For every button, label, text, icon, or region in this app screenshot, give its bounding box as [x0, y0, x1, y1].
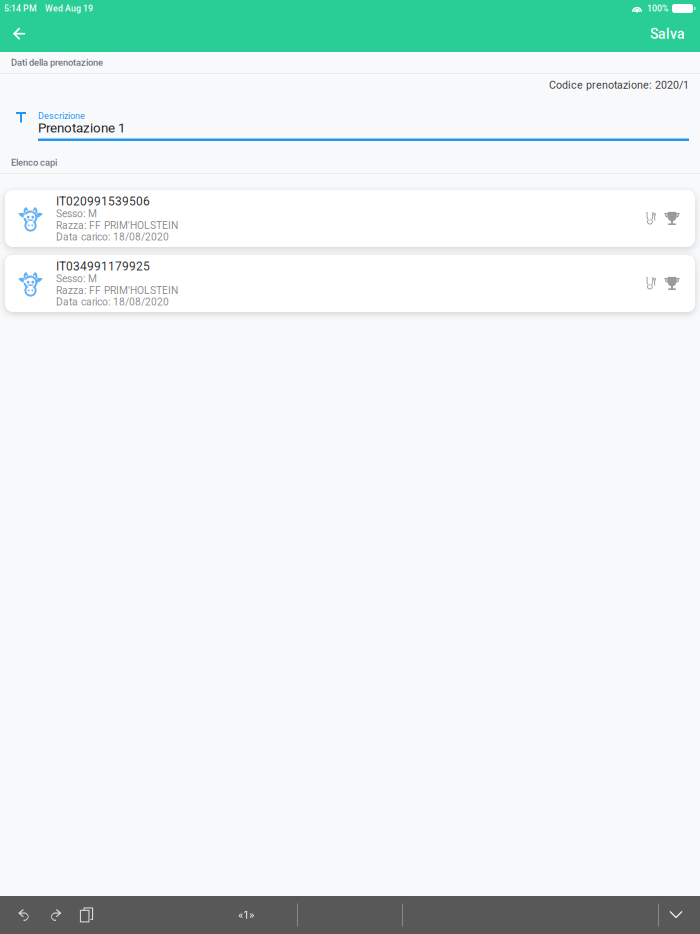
staticText: IT020991539506	[56, 194, 150, 209]
staticText: «1»	[238, 908, 254, 922]
button[interactable]: «1»	[216, 896, 276, 934]
button[interactable]: IT020991539506	[5, 190, 695, 247]
button[interactable]: Redo	[40, 896, 71, 934]
staticText: Data carico: 18/08/2020	[56, 231, 169, 243]
button[interactable]: Paste	[71, 896, 102, 934]
button[interactable]: Salva	[642, 17, 693, 51]
staticText: Salva	[650, 26, 685, 42]
staticText: Prenotazione 1	[38, 120, 125, 136]
button[interactable]: Dismiss keyboard	[659, 896, 693, 934]
staticText: Wed Aug 19	[45, 3, 93, 14]
staticText: Razza: FF PRIM'HOLSTEIN	[56, 219, 178, 231]
staticText: IT034991179925	[56, 259, 150, 274]
staticText: Descrizione	[38, 111, 85, 121]
button[interactable]: Undo	[9, 896, 40, 934]
staticText: 5:14 PM	[4, 3, 37, 14]
staticText: Codice prenotazione: 2020/1	[549, 79, 689, 91]
staticText: Sesso: M	[56, 208, 97, 220]
staticText: Data carico: 18/08/2020	[56, 296, 169, 308]
staticText: Razza: FF PRIM'HOLSTEIN	[56, 284, 178, 296]
staticText: Dati della prenotazione	[11, 57, 103, 68]
button[interactable]: IT034991179925	[5, 255, 695, 312]
staticText: 100%	[647, 3, 668, 14]
staticText: Sesso: M	[56, 273, 97, 285]
button[interactable]: Back	[3, 17, 35, 51]
staticText: Elenco capi	[11, 157, 57, 168]
